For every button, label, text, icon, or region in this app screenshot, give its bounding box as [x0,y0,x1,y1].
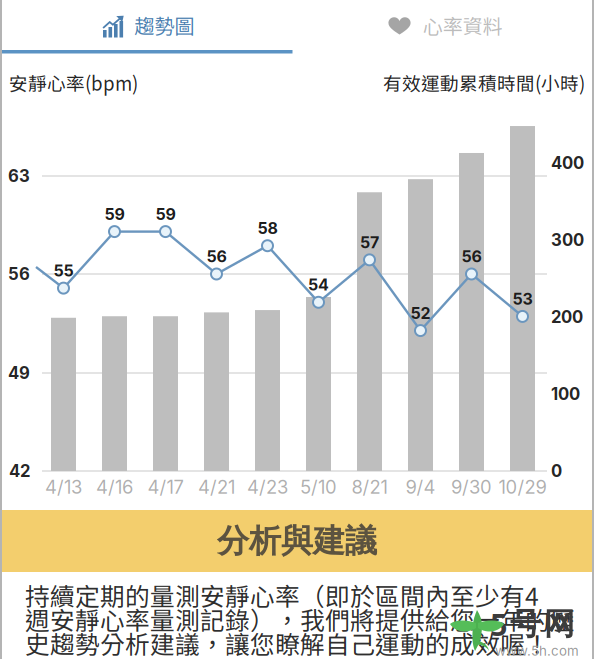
staticText: 100 [551,384,580,404]
staticText: 56 [8,264,30,284]
staticText: 5 [490,603,508,645]
button[interactable]: 心率資料 [297,0,594,50]
staticText: 52 [410,303,430,323]
staticText: 55 [53,261,73,280]
staticText: 400 [551,153,584,173]
staticText: 4/23 [247,476,288,498]
staticText: 心率資料 [423,10,503,39]
staticText: 9/4 [405,476,435,498]
staticText: 4/16 [96,476,133,498]
staticText: 号 [510,605,541,643]
staticText: 史趨勢分析建議，讓您瞭解自己運動的成效喔！ [25,625,550,659]
staticText: 59 [155,204,175,224]
staticText: 0 [551,461,562,481]
staticText: 58 [257,218,277,238]
staticText: 持續定期的量測安靜心率（即於區間內至少有4 [25,577,539,613]
staticText: 63 [8,166,30,186]
staticText: 网 [544,605,575,643]
staticText: 42 [9,461,30,481]
staticText: 5/10 [300,476,337,498]
staticText: 4/17 [147,476,183,498]
staticText: 4/21 [198,476,235,498]
staticText: 300 [551,230,584,250]
staticText: 10/29 [498,476,546,498]
staticText: 200 [551,307,583,327]
staticText: 4/13 [45,476,82,498]
staticText: 趨勢圖 [134,10,194,39]
staticText: 54 [308,275,329,294]
staticText: 57 [360,233,379,252]
staticText: 安靜心率(bpm) [9,69,138,96]
staticText: 56 [206,247,226,266]
staticText: 59 [104,204,124,224]
staticText: 9/30 [451,476,492,498]
staticText: 56 [461,247,481,266]
button[interactable]: 趨勢圖 [0,0,297,50]
staticText: 分析與建議 [217,521,377,561]
staticText: 週安靜心率量測記錄），我們將提供給您一年的歷 [25,601,575,637]
staticText: 有效運動累積時間(小時) [383,69,585,96]
staticText: 8/21 [351,476,387,498]
staticText: 49 [8,363,30,383]
staticText: www.5h.com [495,643,579,659]
staticText: 53 [512,289,532,309]
